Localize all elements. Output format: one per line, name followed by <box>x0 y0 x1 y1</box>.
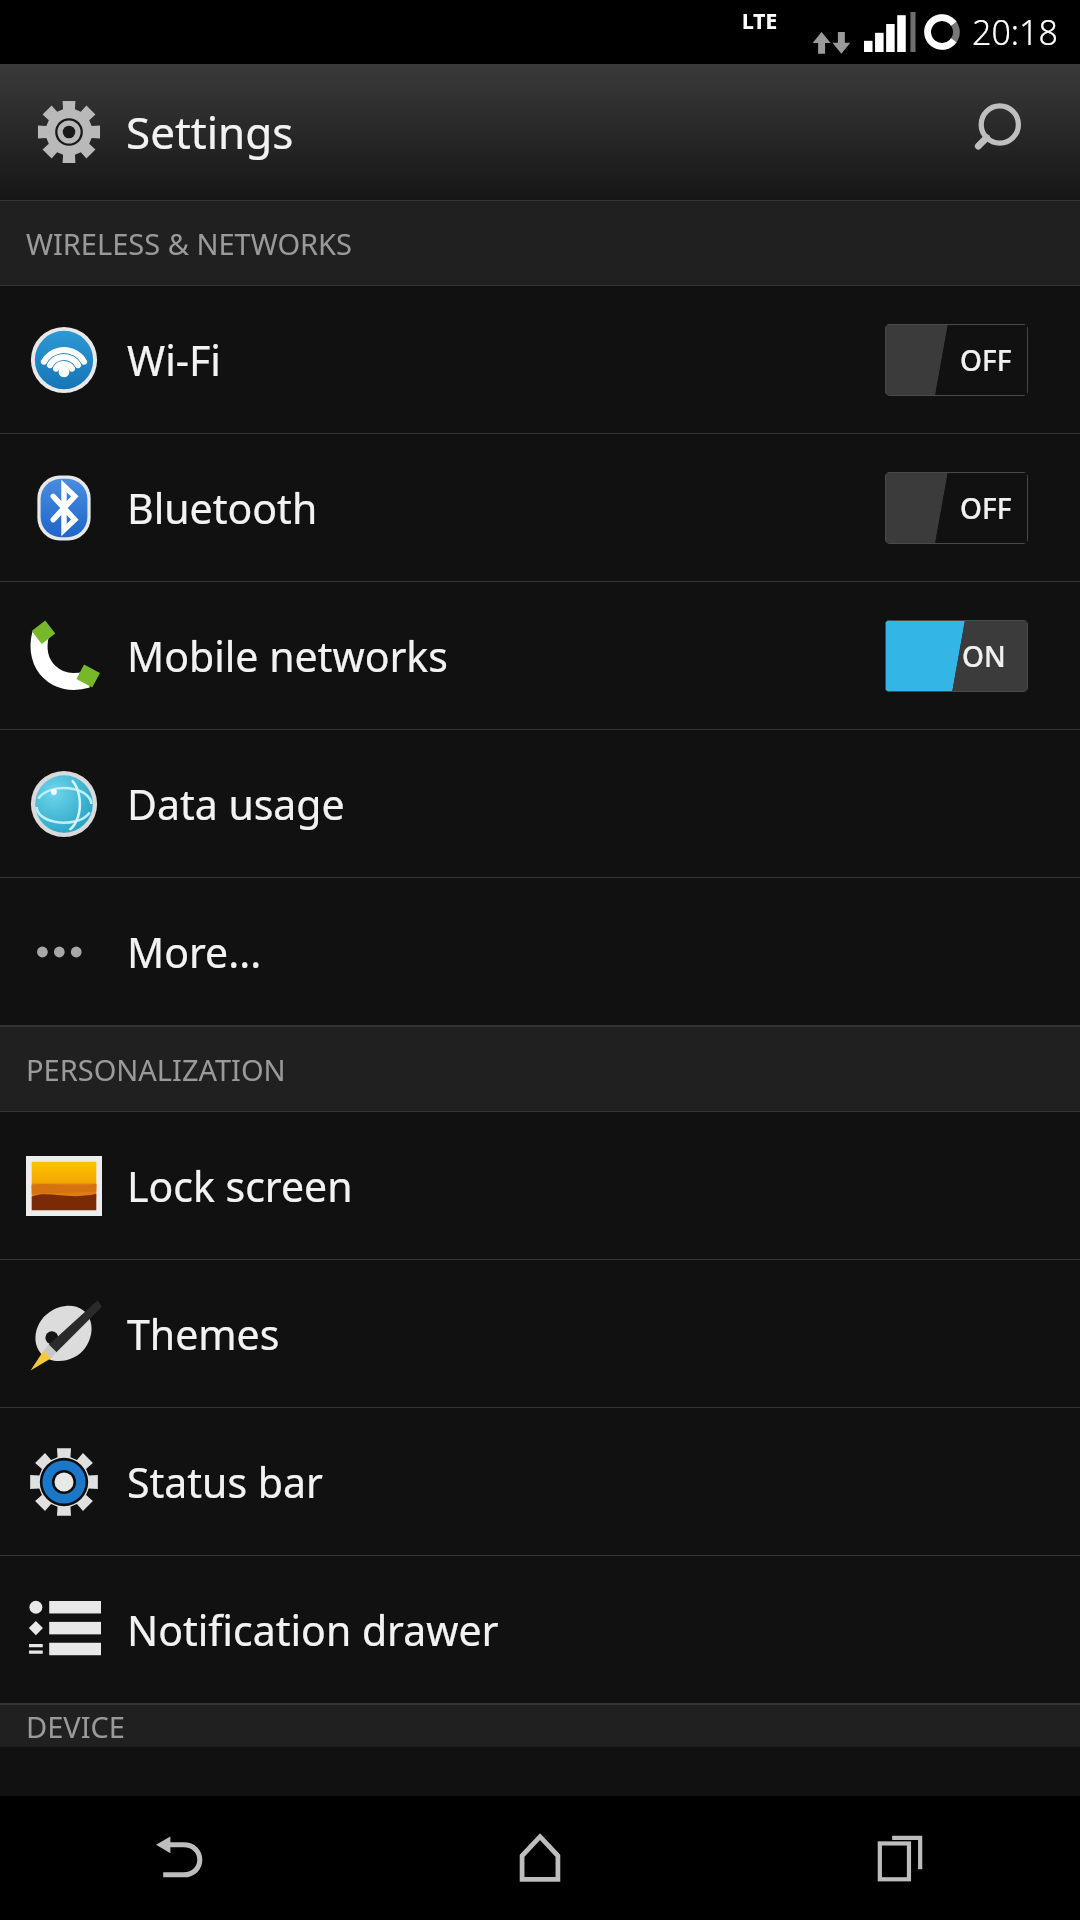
staticText: DEVICE <box>26 1707 125 1746</box>
staticText: Data usage <box>127 776 345 832</box>
staticText: More... <box>127 924 262 980</box>
staticText: Mobile networks <box>127 628 448 684</box>
staticText: LTE <box>742 7 778 36</box>
button[interactable]: Mobile networks <box>0 582 1080 729</box>
button[interactable]: Wi-Fi <box>0 286 1080 433</box>
staticText: Settings <box>126 102 294 162</box>
button[interactable]: OFF <box>885 472 1028 544</box>
staticText: Wi-Fi <box>127 332 221 388</box>
staticText: ON <box>962 637 1006 675</box>
button[interactable]: Lock screen <box>0 1112 1080 1259</box>
staticText: 20:18 <box>972 9 1058 55</box>
staticText: Bluetooth <box>127 480 318 536</box>
staticText: OFF <box>960 341 1012 379</box>
button[interactable]: Back <box>0 1796 360 1920</box>
button[interactable]: Bluetooth <box>0 434 1080 581</box>
staticText: Themes <box>127 1306 280 1362</box>
button[interactable]: More... <box>0 878 1080 1025</box>
button[interactable]: Status bar <box>0 1408 1080 1555</box>
staticText: OFF <box>960 489 1012 527</box>
button[interactable]: Themes <box>0 1260 1080 1407</box>
staticText: WIRELESS & NETWORKS <box>26 224 352 263</box>
button[interactable]: Notification drawer <box>0 1556 1080 1703</box>
staticText: PERSONALIZATION <box>26 1050 286 1089</box>
staticText: Status bar <box>127 1454 323 1510</box>
staticText: Lock screen <box>127 1158 353 1214</box>
button[interactable]: OFF <box>885 324 1028 396</box>
button[interactable]: Home <box>360 1796 720 1920</box>
button[interactable]: Recent apps <box>720 1796 1080 1920</box>
button[interactable]: ON <box>885 620 1028 692</box>
button[interactable]: Search <box>958 84 1054 180</box>
button[interactable]: Data usage <box>0 730 1080 877</box>
staticText: Notification drawer <box>127 1602 499 1658</box>
